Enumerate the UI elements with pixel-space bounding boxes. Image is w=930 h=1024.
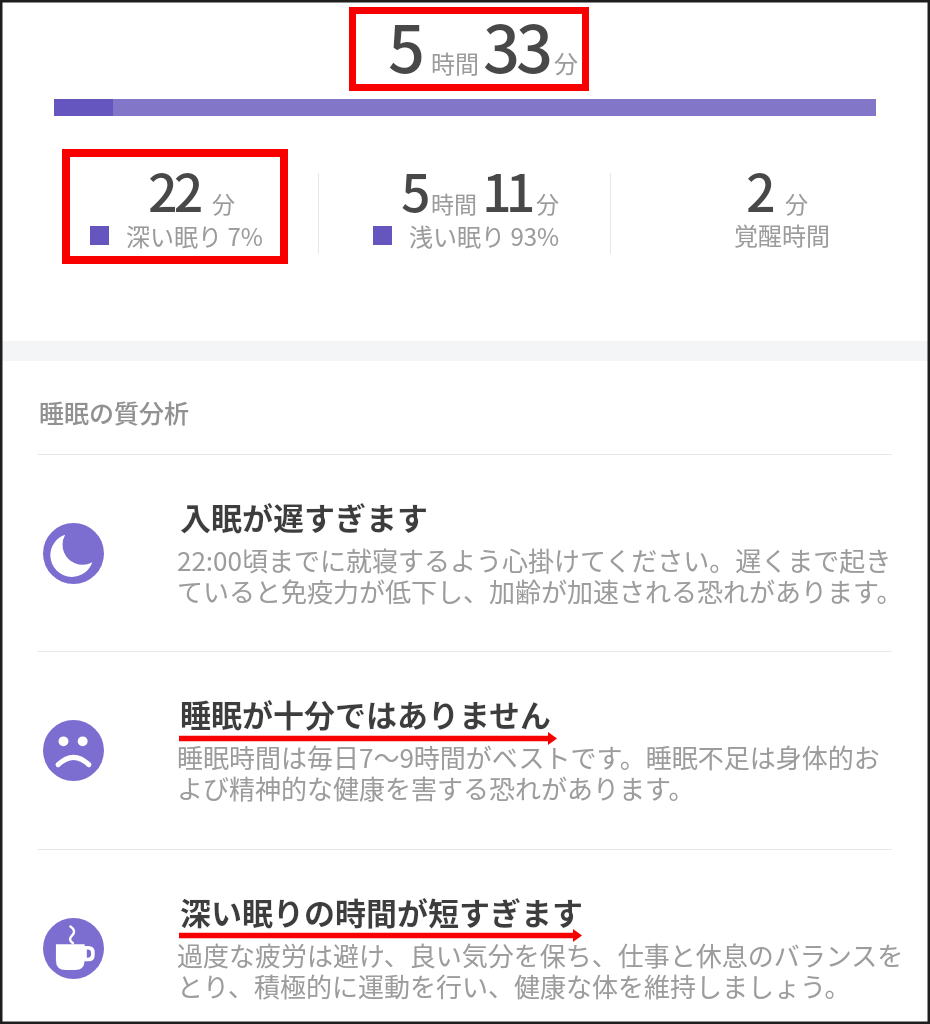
staticText: 時間 — [431, 186, 477, 219]
staticText: 分 — [212, 186, 235, 219]
staticText: 浅い眠り 93% — [409, 218, 560, 253]
other: 深い眠りの時間が短すぎます — [43, 918, 104, 979]
staticText: 深い眠り 7% — [126, 218, 263, 253]
button[interactable]: 5 — [360, 150, 590, 264]
button[interactable]: 2 — [700, 150, 880, 264]
staticText: 睡眠が十分ではありません — [180, 691, 552, 736]
other: 入眠が遅すぎます — [43, 523, 104, 584]
staticText: 分 — [554, 45, 578, 80]
staticText: 22 — [148, 152, 200, 227]
staticText: 5 — [388, 0, 422, 92]
staticText: 深い眠りの時間が短すぎます — [180, 889, 583, 934]
staticText: 過度な疲労は避け、良い気分を保ち、仕事と休息のバランスを とり、積極的に運動を行… — [177, 936, 904, 1004]
button[interactable]: 睡眠が十分ではありません — [0, 651, 930, 849]
staticText: 33 — [483, 0, 550, 92]
staticText: 睡眠時間は毎日7〜9時間がベストです。睡眠不足は身体的お よび精神的な健康を害す… — [177, 738, 880, 806]
staticText: 22:00頃までに就寝するよう心掛けてください。遅くまで起き ていると免疫力が低… — [177, 541, 903, 609]
staticText: 入眠が遅すぎます — [180, 494, 428, 539]
other: 睡眠が十分ではありません — [43, 720, 104, 781]
button[interactable]: 入眠が遅すぎます — [0, 454, 930, 651]
staticText: 時間 — [431, 45, 479, 80]
staticText: 分 — [785, 186, 808, 219]
button[interactable]: 深い眠りの時間が短すぎます — [0, 849, 930, 1024]
staticText: 睡眠の質分析 — [39, 394, 190, 430]
staticText: 11 — [482, 152, 530, 227]
staticText: 2 — [746, 152, 772, 227]
staticText: 覚醒時間 — [734, 217, 830, 252]
staticText: 分 — [536, 186, 559, 219]
staticText: 5 — [401, 152, 427, 227]
button[interactable]: 22 — [62, 150, 288, 264]
